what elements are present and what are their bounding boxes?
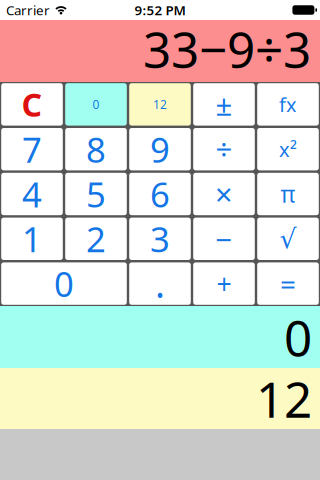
staticText: 1 (22, 216, 42, 262)
staticText: 0 (284, 304, 312, 370)
staticText: 0 (92, 96, 99, 112)
staticText: 12 (153, 96, 167, 112)
staticText: 9 (150, 126, 170, 172)
button[interactable]: 4 (0, 172, 64, 216)
staticText: 2 (86, 216, 106, 262)
button[interactable]: = (256, 261, 320, 306)
staticText: 9:52 PM (134, 1, 185, 19)
staticText: 4 (22, 171, 42, 217)
staticText: − (215, 219, 232, 258)
staticText: 0 (54, 261, 74, 307)
staticText: x² (279, 136, 297, 162)
button[interactable]: π (256, 172, 320, 216)
button[interactable]: + (192, 261, 256, 306)
button[interactable]: 3 (128, 216, 192, 261)
staticText: 12 (256, 366, 312, 431)
button[interactable]: − (192, 216, 256, 261)
staticText: 3 (150, 216, 170, 262)
button[interactable]: 12 (128, 82, 192, 127)
button[interactable]: ± (192, 82, 256, 127)
button[interactable]: 5 (64, 172, 128, 216)
button[interactable]: 9 (128, 127, 192, 172)
button[interactable]: √ (256, 216, 320, 261)
staticText: 6 (150, 171, 170, 217)
button[interactable]: fx (256, 82, 320, 127)
button[interactable]: C (0, 82, 64, 127)
staticText: Carrier (6, 1, 50, 19)
staticText: . (155, 259, 165, 308)
staticText: + (216, 266, 231, 301)
button[interactable]: . (128, 261, 192, 306)
staticText: 7 (22, 126, 42, 172)
staticText: ÷ (215, 130, 232, 169)
button[interactable]: 2 (64, 216, 128, 261)
staticText: 5 (86, 171, 106, 217)
button[interactable]: x² (256, 127, 320, 172)
staticText: √ (279, 224, 296, 254)
button[interactable]: 0 (0, 261, 128, 306)
staticText: × (215, 174, 233, 214)
staticText: π (280, 179, 295, 209)
button[interactable]: 1 (0, 216, 64, 261)
staticText: C (21, 83, 42, 126)
staticText: fx (279, 91, 297, 118)
button[interactable]: 7 (0, 127, 64, 172)
button[interactable]: 8 (64, 127, 128, 172)
button[interactable]: × (192, 172, 256, 216)
button[interactable]: 0 (64, 82, 128, 127)
staticText: 8 (86, 126, 106, 172)
button[interactable]: ÷ (192, 127, 256, 172)
staticText: = (280, 265, 296, 302)
staticText: ± (215, 85, 232, 124)
staticText: 33−9÷3 (143, 16, 311, 81)
button[interactable]: 6 (128, 172, 192, 216)
